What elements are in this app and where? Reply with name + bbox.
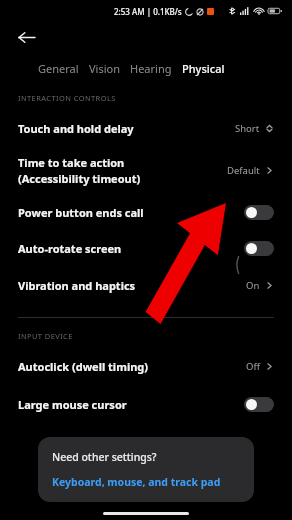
staticText: Vibration and haptics <box>18 278 246 293</box>
staticText: Large mouse cursor <box>18 397 244 412</box>
button[interactable]: Need other settings? <box>38 437 254 502</box>
staticText: Power button ends call <box>18 205 244 220</box>
button[interactable]: Touch and hold delay <box>0 109 292 147</box>
button[interactable]: Time to take action <box>0 147 292 193</box>
staticText: (Accessibility timeout) <box>18 171 141 186</box>
staticText: Physical <box>182 61 225 76</box>
staticText: On <box>246 279 260 292</box>
button[interactable]: Autoclick (dwell timing) <box>0 347 292 385</box>
staticText: Time to take action <box>18 155 125 170</box>
button[interactable]: Hearing <box>130 58 172 79</box>
staticText: 2:53 AM | 0.1KB/s <box>114 6 182 17</box>
staticText: Autoclick (dwell timing) <box>18 359 246 374</box>
staticText: Vision <box>89 61 120 76</box>
staticText: Default <box>227 164 260 177</box>
staticText: Off <box>246 360 260 373</box>
button[interactable]: Vision <box>89 58 120 79</box>
button[interactable]: Power button ends call <box>0 193 292 231</box>
button[interactable]: Vibration and haptics <box>0 266 292 304</box>
button[interactable]: General <box>38 58 79 79</box>
button[interactable]: Large mouse cursor <box>0 385 292 423</box>
staticText: Short <box>235 122 260 135</box>
staticText: Need other settings? <box>52 450 157 464</box>
button[interactable]: Auto-rotate screen <box>0 231 292 266</box>
staticText: INTERACTION CONTROLS <box>18 93 116 103</box>
button[interactable]: Back <box>10 22 42 52</box>
staticText: General <box>38 61 79 76</box>
staticText: Keyboard, mouse, and track pad <box>52 475 221 489</box>
button[interactable]: Physical <box>182 58 225 79</box>
staticText: Hearing <box>130 61 172 76</box>
staticText: Touch and hold delay <box>18 121 235 136</box>
staticText: INPUT DEVICE <box>18 331 73 341</box>
staticText: Auto-rotate screen <box>18 241 244 256</box>
